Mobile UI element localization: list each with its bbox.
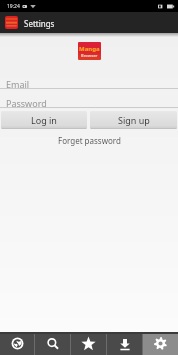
staticText: Email: [6, 78, 30, 90]
button[interactable]: Menu: [5, 16, 18, 29]
button[interactable]: Favorites: [71, 332, 106, 355]
button[interactable]: Forget password: [54, 134, 125, 147]
button[interactable]: Search: [35, 332, 70, 355]
staticText: Password: [6, 97, 47, 109]
button[interactable]: Settings: [143, 332, 178, 355]
button[interactable]: Downloads: [107, 332, 142, 355]
staticText: Manga: [79, 45, 100, 53]
button[interactable]: Log in: [1, 111, 87, 129]
staticText: Browser: [81, 53, 98, 58]
staticText: Sign up: [118, 114, 150, 126]
staticText: Log in: [31, 114, 57, 126]
staticText: 19:24: [7, 3, 20, 10]
button[interactable]: Sign up: [90, 111, 177, 129]
button[interactable]: Browse: [0, 332, 34, 355]
staticText: Forget password: [58, 135, 121, 146]
staticText: Settings: [24, 18, 55, 29]
